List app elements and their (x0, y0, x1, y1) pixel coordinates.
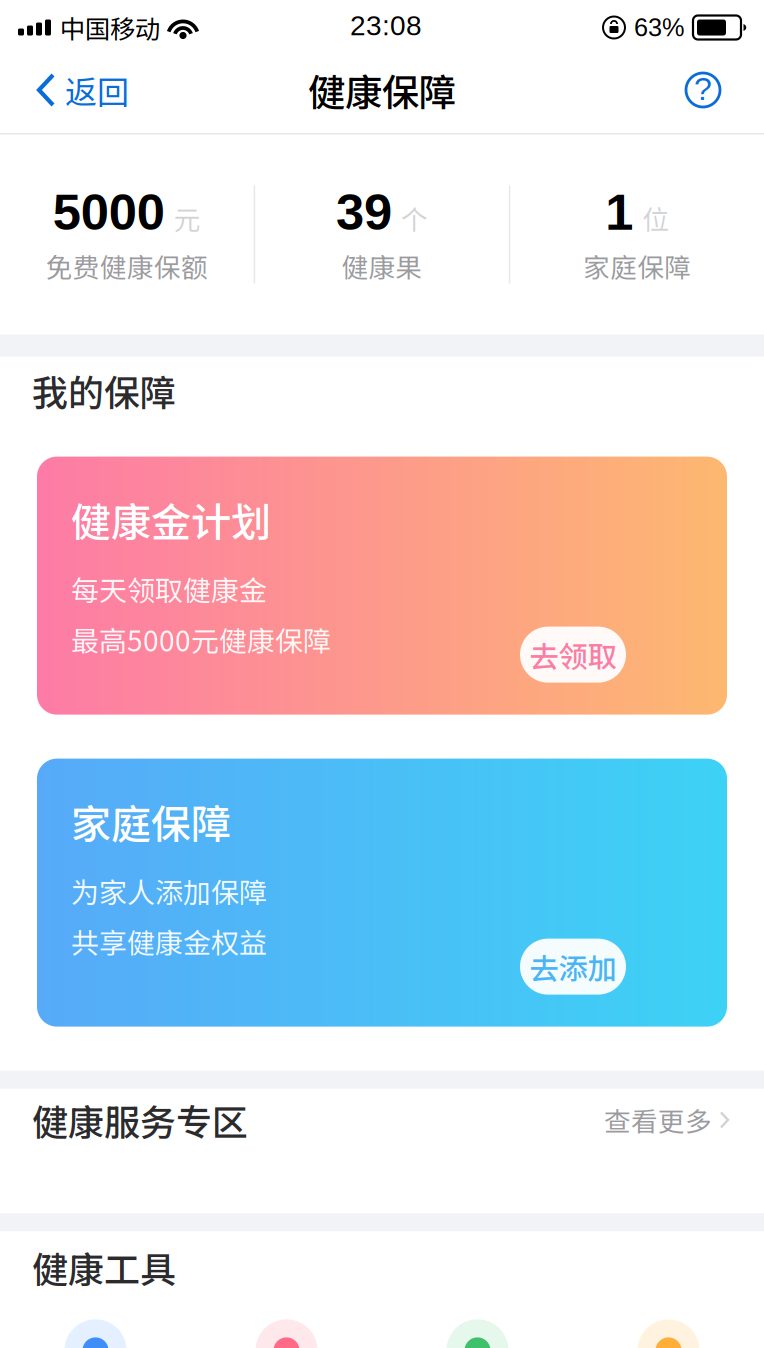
staticText: 39 (336, 184, 392, 240)
staticText: 去领取 (529, 633, 616, 676)
button[interactable]: 健康金计划 (37, 457, 727, 715)
button[interactable]: 步数 (382, 1319, 573, 1348)
staticText: 去添加 (529, 945, 616, 988)
staticText: 家庭保障 (71, 793, 231, 850)
staticText: 63% (634, 13, 685, 42)
button[interactable]: 1 (510, 184, 764, 285)
button[interactable]: 体检 (573, 1319, 764, 1348)
staticText: 23:08 (350, 10, 422, 41)
button[interactable]: 问医生 (0, 1319, 191, 1348)
button[interactable]: 返回 (26, 59, 139, 129)
button[interactable]: 5000 (0, 184, 254, 285)
staticText: 健康服务专区 (32, 1094, 248, 1146)
staticText: 共享健康金权益 (71, 921, 267, 962)
staticText: 个 (401, 199, 428, 237)
button[interactable]: 帮助 (688, 68, 740, 120)
staticText: 健康金计划 (71, 491, 271, 548)
staticText: 我的保障 (32, 364, 176, 417)
staticText: 每天领取健康金 (71, 568, 267, 609)
button[interactable]: 查看更多 (604, 1093, 730, 1147)
staticText: 中国移动 (60, 9, 160, 46)
staticText: 返回 (65, 67, 129, 113)
staticText: 健康果 (341, 246, 422, 285)
staticText: 元 (174, 199, 201, 237)
staticText: ? (694, 71, 712, 107)
staticText: 免费健康保额 (46, 246, 208, 285)
staticText: 为家人添加保障 (71, 870, 267, 911)
staticText: 位 (642, 199, 669, 237)
button[interactable]: 家庭保障 (37, 759, 727, 1027)
button[interactable]: 健康测 (191, 1319, 382, 1348)
staticText: 家庭保障 (583, 246, 691, 285)
button[interactable]: 39 (255, 184, 509, 285)
staticText: 健康工具 (32, 1241, 176, 1293)
staticText: 1 (605, 184, 633, 240)
staticText: 查看更多 (604, 1101, 712, 1139)
staticText: 健康保障 (308, 63, 456, 117)
staticText: 最高5000元健康保障 (71, 619, 331, 660)
staticText: 5000 (53, 184, 165, 240)
